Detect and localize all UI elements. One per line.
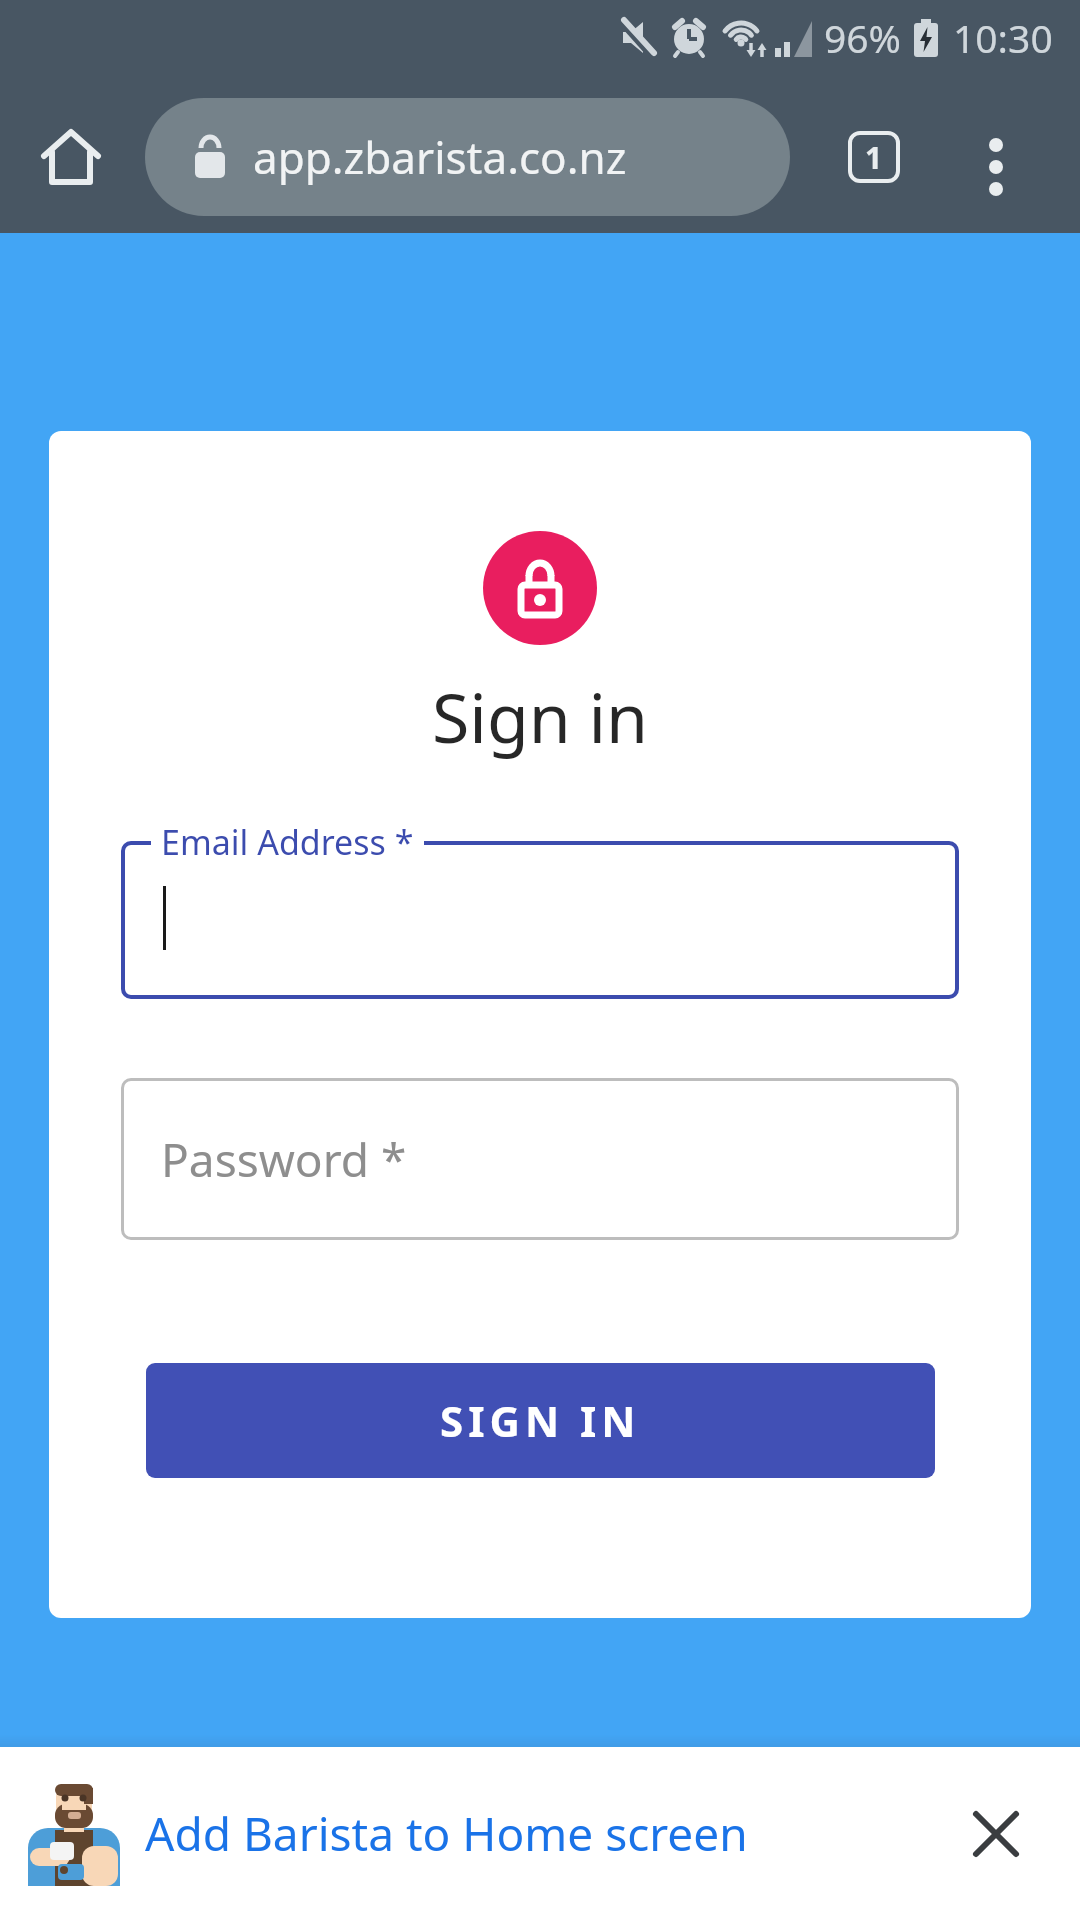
button[interactable] — [121, 841, 959, 999]
button[interactable]: Password * — [121, 1078, 959, 1240]
button[interactable] — [36, 122, 106, 192]
staticText: Sign in — [432, 670, 648, 763]
staticText: 1 — [865, 137, 883, 178]
staticText: app.zbarista.co.nz — [253, 127, 627, 187]
button[interactable] — [976, 137, 1016, 177]
staticText: Email Address * — [161, 819, 414, 865]
staticText: Password * — [161, 1128, 407, 1191]
staticText: 10:30 — [953, 11, 1053, 64]
button[interactable]: SIGN IN — [146, 1363, 935, 1478]
staticText: 96% — [824, 11, 902, 64]
button[interactable]: Add Barista to Home screen — [0, 1747, 1080, 1920]
staticText: SIGN IN — [440, 1392, 641, 1449]
staticText: Add Barista to Home screen — [145, 1802, 748, 1865]
button[interactable]: app.zbarista.co.nz — [145, 98, 790, 216]
button[interactable]: 1 — [848, 131, 900, 183]
